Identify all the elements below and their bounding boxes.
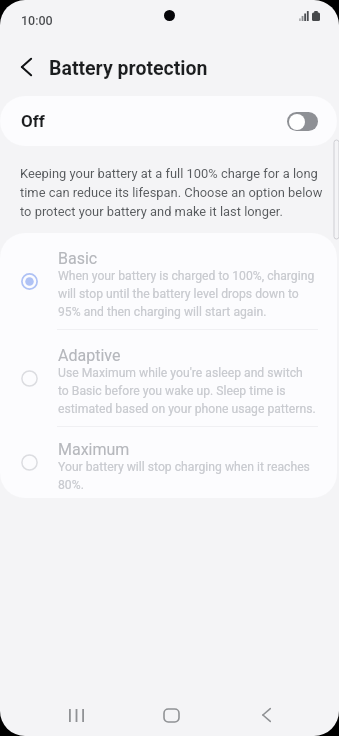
- staticText: When your battery is charged to 100%, ch…: [58, 269, 315, 319]
- staticText: Basic: [58, 249, 98, 268]
- button[interactable]: Adaptive: [0, 330, 337, 426]
- staticText: Battery protection: [49, 57, 208, 80]
- staticText: Adaptive: [58, 346, 121, 365]
- staticText: Your battery will stop charging when it …: [58, 460, 310, 492]
- button[interactable]: Off: [0, 96, 337, 146]
- button[interactable]: Navigate up: [12, 53, 40, 81]
- button[interactable]: Battery protection toggle: [287, 112, 318, 131]
- staticText: Keeping your battery at a full 100% char…: [20, 166, 323, 219]
- button[interactable]: Basic: [0, 233, 337, 329]
- button[interactable]: Maximum: [0, 427, 337, 498]
- staticText: Maximum: [58, 440, 130, 459]
- staticText: 10:00: [21, 13, 53, 28]
- button[interactable]: Home: [124, 694, 219, 736]
- button[interactable]: Back: [219, 694, 314, 736]
- button[interactable]: Recent apps: [29, 694, 124, 736]
- staticText: Off: [21, 111, 45, 131]
- staticText: Use Maximum while you're asleep and swit…: [58, 366, 315, 416]
